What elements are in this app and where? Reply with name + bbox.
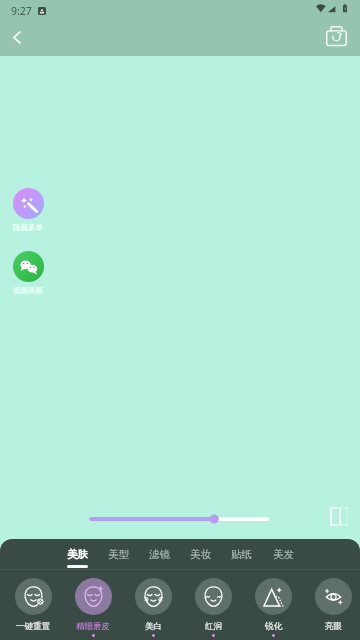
staticText: 精细磨皮 <box>76 621 110 632</box>
button[interactable]: 美妆 <box>180 542 220 566</box>
staticText: 视频美颜 <box>13 286 43 295</box>
button[interactable]: 贴纸 <box>221 542 261 566</box>
staticText: 一键重置 <box>16 621 50 632</box>
staticText: 美发 <box>273 548 294 561</box>
button[interactable]: 美肤 <box>57 542 97 566</box>
button[interactable]: Back <box>0 21 32 53</box>
staticText: 9:27 <box>11 4 32 18</box>
button[interactable]: 滤镜 <box>139 542 179 566</box>
staticText: 隐藏菜单 <box>13 223 43 232</box>
staticText: 美型 <box>108 548 129 561</box>
staticText: 美妆 <box>190 548 211 561</box>
button[interactable]: Compare before after <box>323 500 355 532</box>
button[interactable]: 红润 <box>184 578 242 637</box>
button[interactable]: 锐化 <box>244 578 302 637</box>
button[interactable]: 隐藏菜单 <box>11 188 45 232</box>
button[interactable]: Show original <box>320 19 352 51</box>
staticText: 美白 <box>145 621 162 632</box>
button[interactable]: 视频美颜 <box>11 251 45 295</box>
button[interactable]: 美白 <box>124 578 182 637</box>
button[interactable]: 精细磨皮 <box>64 578 122 637</box>
staticText: 美肤 <box>67 548 88 561</box>
staticText: 锐化 <box>265 621 282 632</box>
button[interactable]: 美发 <box>263 542 303 566</box>
button[interactable]: 亮眼 <box>304 578 360 634</box>
staticText: 红润 <box>205 621 222 632</box>
button[interactable]: Intensity <box>86 507 274 531</box>
button[interactable]: 美型 <box>98 542 138 566</box>
staticText: 贴纸 <box>231 548 252 561</box>
button[interactable]: 一键重置 <box>4 578 62 634</box>
staticText: 滤镜 <box>149 548 170 561</box>
staticText: 亮眼 <box>325 621 342 632</box>
